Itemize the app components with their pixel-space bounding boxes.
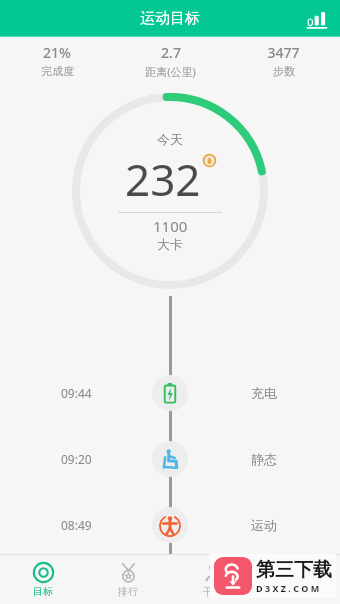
staticText: 09:20 [61, 451, 92, 467]
staticText: 1100 [153, 216, 188, 236]
button[interactable]: Statistics [302, 4, 332, 34]
staticText: 今天 [157, 131, 183, 147]
staticText: 设置 [288, 585, 308, 598]
staticText: 21% [43, 43, 71, 62]
staticText: 08:49 [61, 517, 92, 533]
button[interactable]: 设置 [255, 555, 340, 604]
staticText: 第三下载 [256, 558, 332, 582]
staticText: D 3 X Z . C O M [256, 582, 320, 594]
staticText: 大卡 [157, 236, 183, 252]
button[interactable]: 排行 [85, 555, 170, 604]
staticText: 排行 [118, 585, 138, 598]
staticText: 完成度 [41, 64, 74, 78]
button[interactable]: 3477 [227, 43, 340, 78]
staticText: 09:44 [61, 385, 92, 401]
button[interactable]: 09:20 [0, 440, 340, 478]
staticText: 充电 [251, 385, 277, 401]
staticText: 目标 [33, 585, 53, 598]
staticText: 干人 [203, 585, 223, 598]
staticText: 3477 [267, 43, 300, 62]
staticText: 运动 [251, 517, 277, 533]
staticText: 232 [125, 149, 201, 209]
button[interactable]: 09:44 [0, 374, 340, 412]
staticText: 静态 [251, 451, 277, 467]
button[interactable]: 干人 [170, 555, 255, 604]
button[interactable]: 今天 [70, 91, 270, 291]
button[interactable]: 目标 [0, 555, 85, 604]
button[interactable]: 2.7 [114, 43, 227, 79]
staticText: 距离(公里) [145, 64, 196, 79]
staticText: 步数 [273, 64, 295, 78]
button[interactable]: 21% [0, 43, 114, 78]
staticText: 运动目标 [140, 9, 200, 28]
staticText: 2.7 [161, 43, 181, 62]
button[interactable]: 08:49 [0, 506, 340, 544]
